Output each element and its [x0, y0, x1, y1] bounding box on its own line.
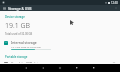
button[interactable]: Screenshot	[87, 64, 101, 72]
button[interactable]: Home	[53, 64, 67, 72]
staticText: 19.1 GB	[5, 21, 31, 31]
button[interactable]: Recents	[70, 64, 84, 72]
button[interactable]: Eject	[112, 62, 116, 63]
button[interactable]: Internal storage	[0, 39, 120, 51]
button[interactable]: More options	[114, 6, 118, 10]
button[interactable]: Back	[36, 64, 50, 72]
staticText: Portable storage	[5, 55, 28, 59]
staticText: Graphite USB drive	[11, 61, 42, 63]
staticText: Internal storage	[11, 40, 37, 45]
staticText: Device storage	[5, 15, 25, 19]
staticText: Total used of 32.00 GB	[5, 32, 33, 36]
button[interactable]: 19.1 GB	[0, 20, 120, 37]
staticText: 12:30	[111, 1, 118, 5]
staticText: Storage & USB	[8, 6, 32, 11]
button[interactable]: Graphite USB drive	[0, 60, 120, 64]
button[interactable]: Navigate up	[2, 6, 6, 10]
button[interactable]: Back	[19, 64, 33, 72]
staticText: 19.1 GB used of 32.00 GB	[11, 45, 41, 48]
